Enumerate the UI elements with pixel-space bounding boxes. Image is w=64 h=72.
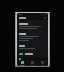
- button[interactable]: Profile: [38, 60, 47, 66]
- button[interactable]: [17, 43, 48, 51]
- button[interactable]: Search: [17, 16, 48, 20]
- button[interactable]: Home: [18, 60, 27, 66]
- button[interactable]: [17, 21, 48, 31]
- button[interactable]: Library: [28, 60, 37, 66]
- button[interactable]: [17, 31, 48, 43]
- button[interactable]: [17, 51, 48, 57]
- button[interactable]: New: [19, 58, 21, 60]
